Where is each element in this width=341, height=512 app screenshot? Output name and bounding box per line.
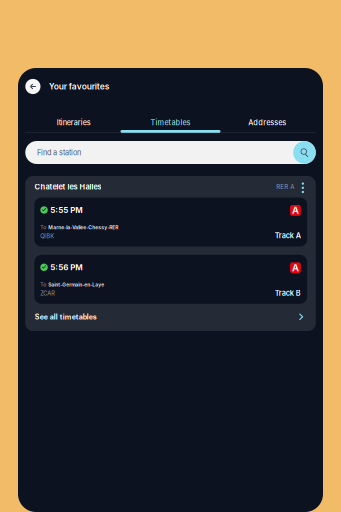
button[interactable]: Addresses	[219, 105, 316, 138]
staticText: Marne-la-Vallée-Chessy-RER	[48, 224, 118, 230]
button[interactable]: 5:56 PM	[34, 255, 307, 304]
staticText: A	[292, 262, 299, 273]
button[interactable]: More options	[297, 179, 308, 195]
button[interactable]: See all timetables	[25, 308, 316, 326]
staticText: QIBK	[40, 233, 54, 239]
button[interactable]: Itineraries	[25, 105, 122, 138]
staticText: 5:56 PM	[50, 262, 82, 272]
staticText: 5:55 PM	[50, 205, 82, 215]
staticText: Track A	[275, 231, 301, 240]
staticText: Track B	[275, 289, 301, 297]
button[interactable]: Timetables	[122, 105, 219, 138]
staticText: Châtelet les Halles	[34, 182, 101, 191]
staticText: To	[40, 282, 46, 288]
button[interactable]: Find a station	[25, 141, 316, 164]
staticText: Itineraries	[57, 118, 91, 127]
staticText: To	[40, 224, 46, 231]
staticText: Find a station	[37, 148, 81, 157]
staticText: Saint-Germain-en-Laye	[48, 282, 104, 288]
staticText: Your favourites	[49, 81, 110, 92]
button[interactable]: 5:55 PM	[34, 198, 307, 246]
staticText: ZCAR	[40, 290, 55, 297]
staticText: Timetables	[150, 118, 190, 127]
staticText: A	[292, 205, 299, 216]
staticText: RER A	[276, 183, 294, 190]
staticText: Addresses	[248, 118, 286, 127]
staticText: See all timetables	[35, 312, 97, 321]
button[interactable]: Back	[25, 79, 40, 94]
